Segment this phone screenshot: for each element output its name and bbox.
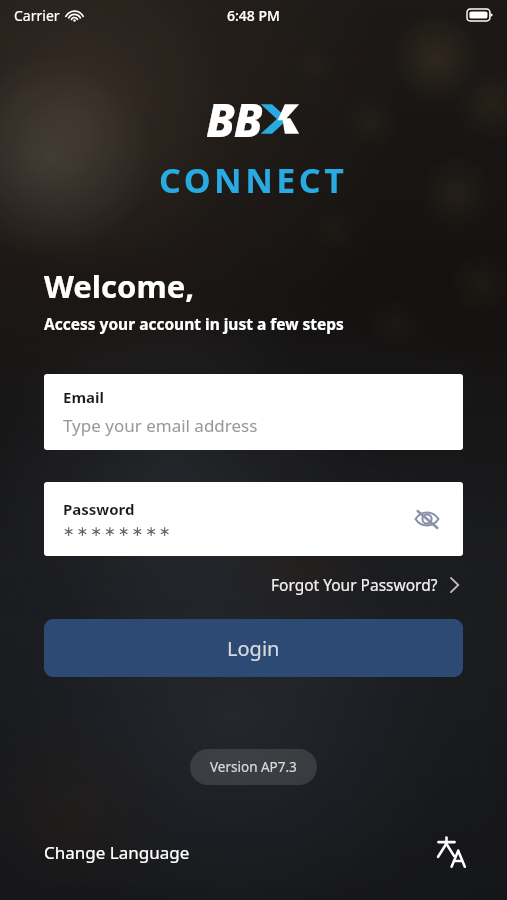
staticText: Login xyxy=(227,635,280,662)
staticText: Access your account in just a few steps xyxy=(44,313,344,334)
staticText: Password xyxy=(63,499,135,519)
staticText: Type your email address xyxy=(63,414,258,437)
staticText: Carrier xyxy=(14,6,60,25)
button[interactable]: Change Language xyxy=(0,832,507,872)
staticText: Welcome, xyxy=(44,265,195,307)
staticText: Version AP7.3 xyxy=(210,758,297,776)
button[interactable]: Email xyxy=(44,374,463,450)
button[interactable]: Password xyxy=(44,482,463,556)
staticText: Change Language xyxy=(44,841,190,864)
staticText: Forgot Your Password? xyxy=(271,574,438,595)
staticText: CONNECT xyxy=(159,157,348,203)
staticText: BB xyxy=(206,88,262,151)
button[interactable]: Login xyxy=(44,619,463,677)
other: Change Language xyxy=(431,832,471,872)
staticText: 6:48 PM xyxy=(227,6,280,25)
staticText: Email xyxy=(63,387,104,407)
staticText: ∗∗∗∗∗∗∗∗ xyxy=(63,523,173,539)
button[interactable]: Show password xyxy=(405,497,449,541)
button[interactable]: Forgot Your Password? xyxy=(267,568,463,601)
